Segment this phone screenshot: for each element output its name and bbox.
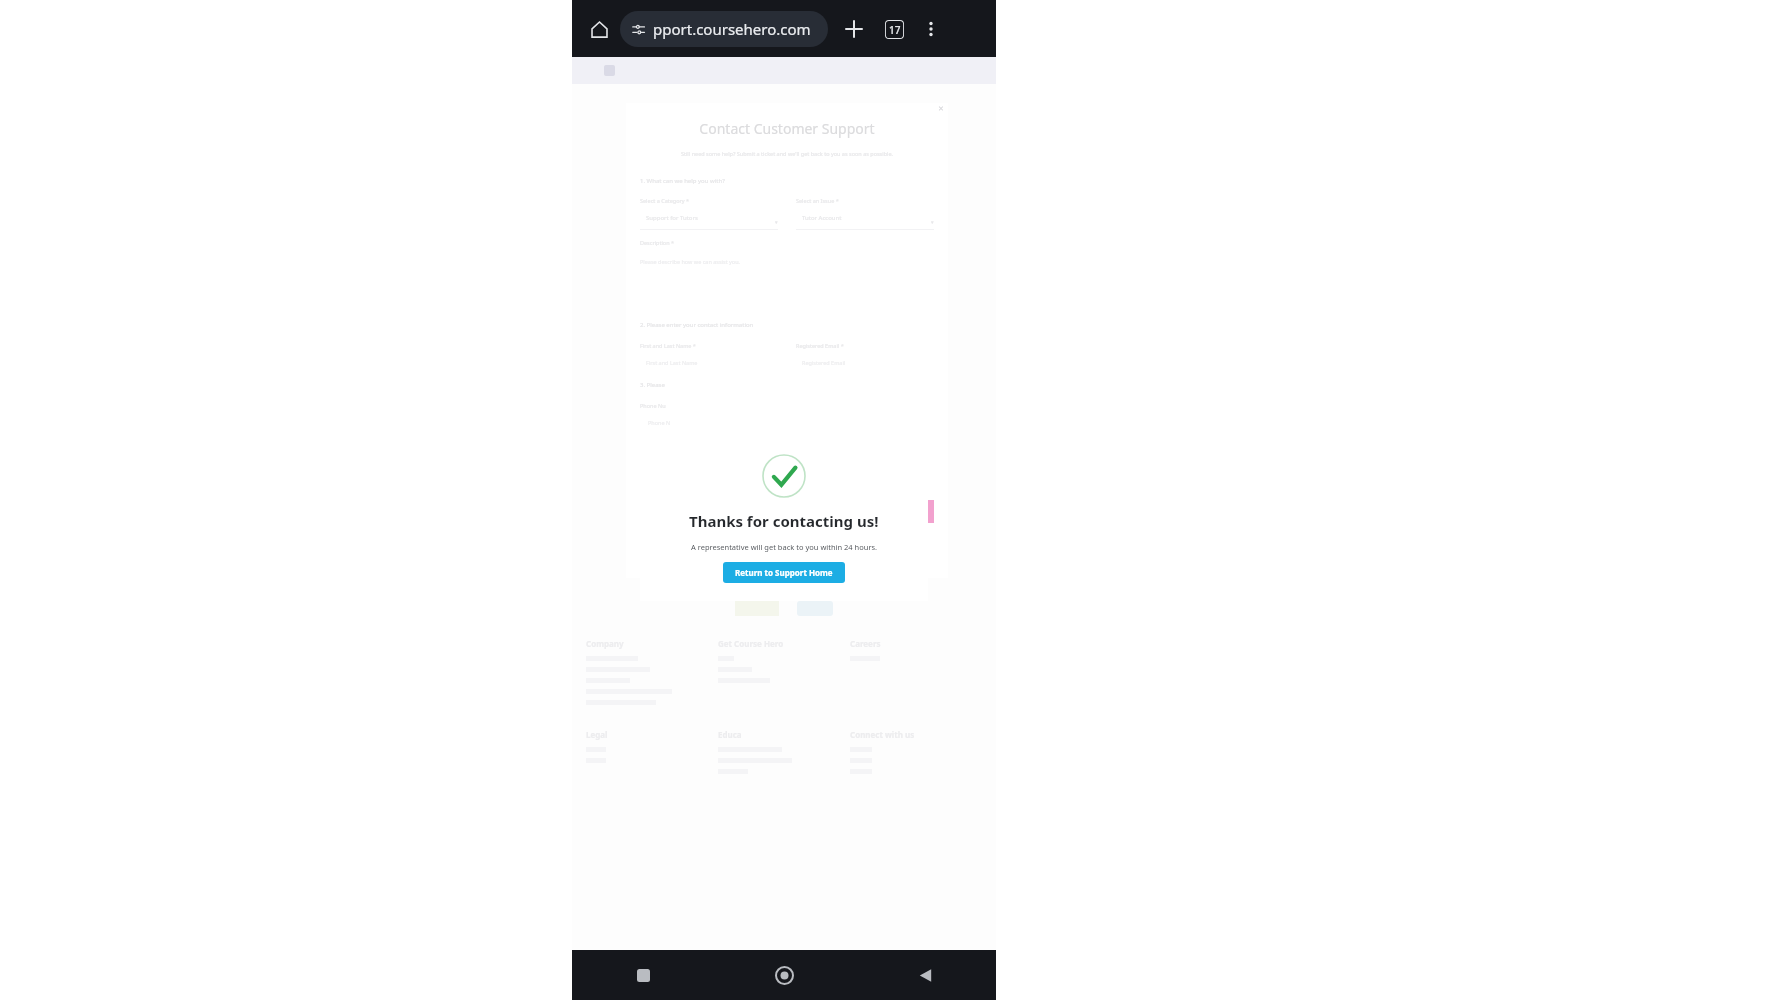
staticText: Careers [850,638,881,649]
button[interactable]: pport.coursehero.com [620,11,828,47]
staticText: 3. Please [640,381,665,389]
staticText: Select an Issue * [796,197,839,204]
button[interactable]: Return to Support Home [723,562,845,583]
staticText: 2. Please enter your contact information [640,321,754,329]
button[interactable]: More options [916,14,946,44]
staticText: 17 [889,23,901,37]
staticText: Description * [640,239,675,246]
staticText: A representative will get back to you wi… [691,542,878,552]
staticText: Please describe how we can assist you. [640,258,741,265]
button[interactable]: New tab [838,13,870,45]
button[interactable]: Submit [640,500,934,523]
staticText: Educa [718,729,742,740]
staticText: Still need some help? Submit a ticket an… [640,150,934,157]
staticText: Phone N [648,419,671,426]
button[interactable]: Home [714,950,855,1000]
staticText: First and Last Name [646,359,698,366]
staticText: Tutor Account [802,214,842,222]
staticText: pport.coursehero.com [653,19,811,39]
staticText: ▾ [931,219,934,225]
staticText: Get Course Hero [718,638,784,649]
button[interactable]: Tabs [878,13,910,45]
staticText: Registered Email [802,359,846,366]
staticText: Support for Tutors [646,214,698,222]
staticText: Registered Email * [796,342,844,349]
staticText: First and Last Name * [640,342,696,349]
staticText: Connect with us [850,729,915,740]
staticText: ▾ [775,219,778,225]
staticText: Contact Customer Support [640,119,934,138]
button[interactable]: Back [855,950,996,1000]
button[interactable]: Recent apps [572,950,714,1000]
staticText: Company [586,638,624,649]
staticText: Thanks for contacting us! [689,511,879,531]
button[interactable]: Home [582,12,616,46]
staticText: Legal [586,729,608,740]
staticText: 1. What can we help you with? [640,177,725,185]
staticText: Return to Support Home [735,567,833,578]
staticText: Phone Nu [640,402,666,409]
staticText: Select a Category * [640,197,690,204]
staticText: ✕ [938,105,944,113]
